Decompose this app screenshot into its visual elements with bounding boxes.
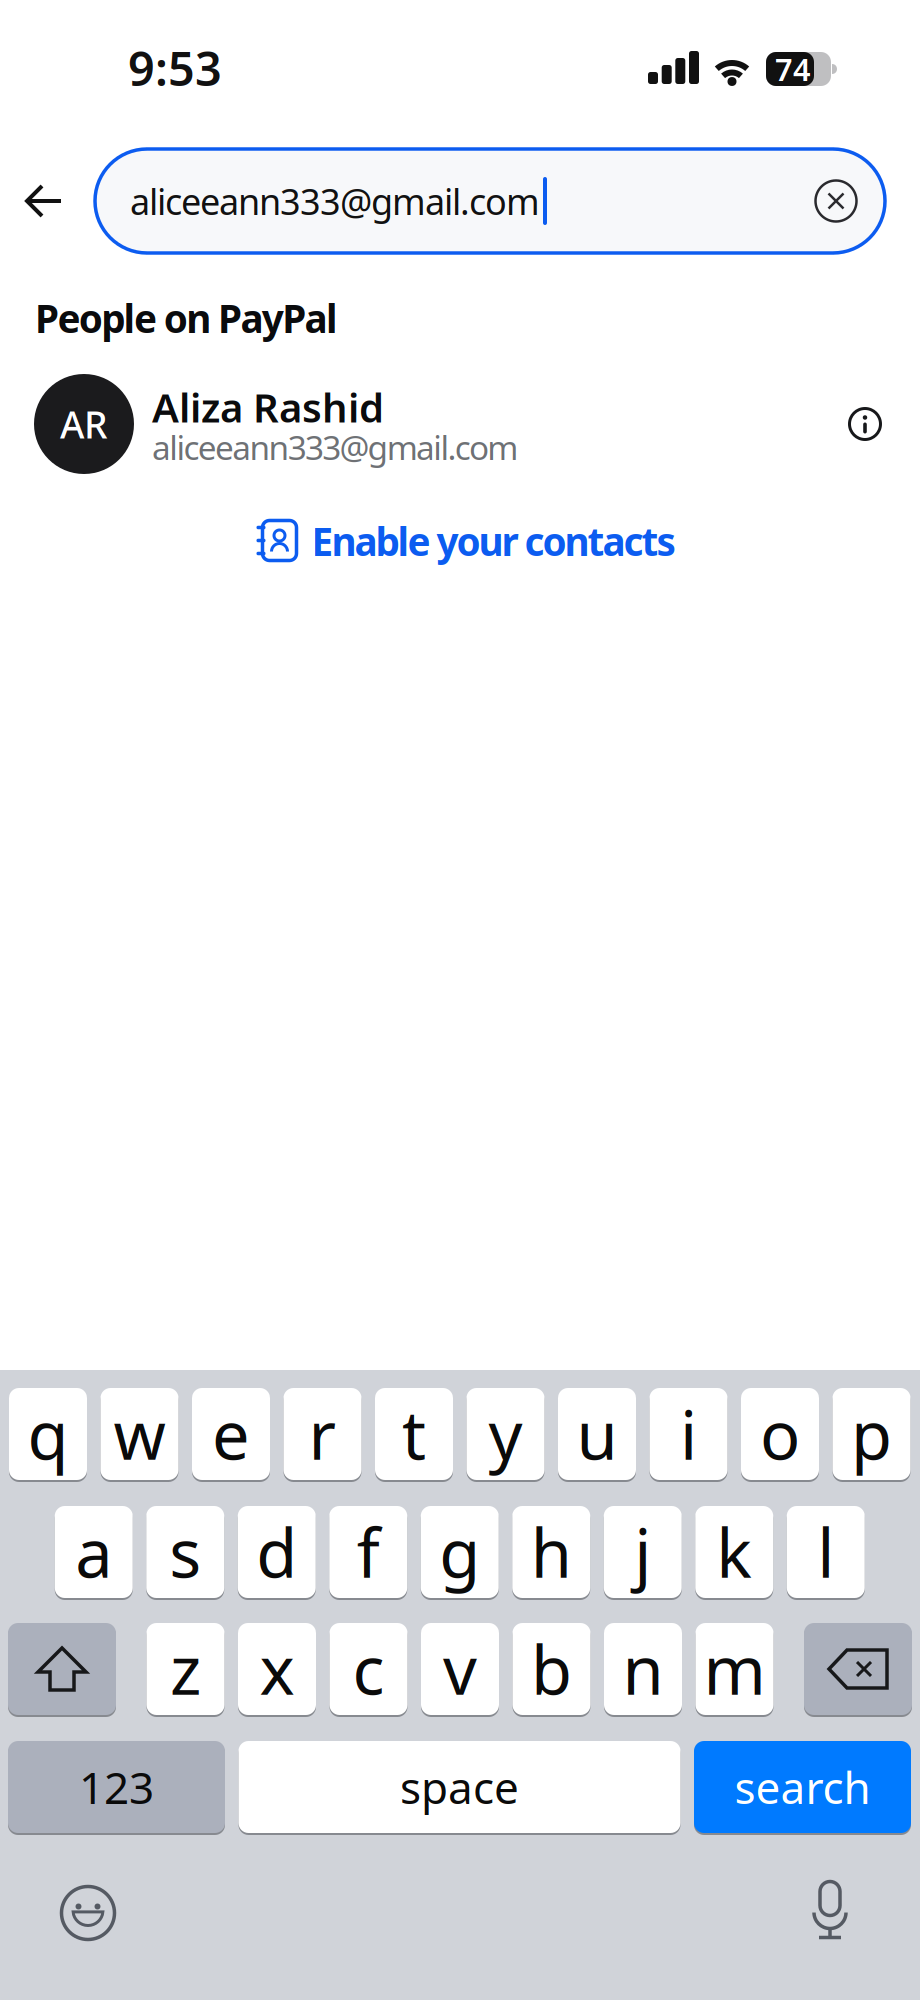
button[interactable]: o xyxy=(741,1388,819,1482)
button[interactable]: 123 xyxy=(8,1741,225,1835)
staticText: a xyxy=(75,1508,112,1596)
button[interactable]: g xyxy=(421,1506,499,1600)
staticText: q xyxy=(27,1390,68,1478)
staticText: d xyxy=(256,1508,297,1596)
staticText: r xyxy=(308,1390,336,1478)
button[interactable]: i xyxy=(649,1388,727,1482)
button[interactable]: s xyxy=(146,1506,224,1600)
staticText: k xyxy=(716,1508,752,1596)
button[interactable]: h xyxy=(512,1506,590,1600)
staticText: m xyxy=(703,1625,765,1713)
button[interactable] xyxy=(849,408,880,439)
staticText: f xyxy=(357,1508,380,1596)
staticText: n xyxy=(622,1625,663,1713)
button[interactable]: Enable your contacts xyxy=(256,515,675,567)
staticText: i xyxy=(680,1390,697,1478)
button[interactable]: u xyxy=(558,1388,636,1482)
staticText: u xyxy=(576,1390,617,1478)
staticText: c xyxy=(352,1625,384,1713)
staticText: 9:53 xyxy=(128,37,222,99)
staticText: x xyxy=(259,1625,294,1713)
button[interactable] xyxy=(815,180,856,221)
staticText: aliceeann333@gmail.com xyxy=(152,425,518,469)
button[interactable]: l xyxy=(787,1506,865,1600)
staticText: z xyxy=(170,1625,201,1713)
button[interactable] xyxy=(61,1886,114,1939)
staticText: Enable your contacts xyxy=(311,515,675,567)
button[interactable]: j xyxy=(604,1506,682,1600)
staticText: 74 xyxy=(775,49,811,89)
button[interactable] xyxy=(809,1881,851,1938)
button[interactable]: p xyxy=(832,1388,910,1482)
button[interactable]: r xyxy=(283,1388,361,1482)
staticText: AR xyxy=(60,399,108,449)
staticText: h xyxy=(531,1508,572,1596)
button[interactable]: z xyxy=(146,1623,224,1717)
staticText: j xyxy=(634,1508,651,1596)
button[interactable]: space xyxy=(238,1741,680,1835)
button[interactable]: t xyxy=(375,1388,453,1482)
button[interactable]: x xyxy=(238,1623,316,1717)
button[interactable]: c xyxy=(329,1623,407,1717)
staticText: y xyxy=(488,1390,522,1478)
button[interactable]: a xyxy=(55,1506,133,1600)
staticText: t xyxy=(402,1390,426,1478)
staticText: g xyxy=(439,1508,480,1596)
button[interactable]: q xyxy=(9,1388,87,1482)
staticText: 123 xyxy=(79,1758,154,1816)
button[interactable]: AR xyxy=(0,372,920,476)
staticText: Aliza Rashid xyxy=(152,380,384,433)
staticText: v xyxy=(443,1625,477,1713)
button[interactable]: aliceeann333@gmail.com xyxy=(95,149,885,253)
button[interactable]: m xyxy=(695,1623,773,1717)
staticText: People on PayPal xyxy=(35,292,338,344)
staticText: l xyxy=(817,1508,834,1596)
button[interactable]: k xyxy=(695,1506,773,1600)
staticText: space xyxy=(400,1758,519,1816)
button[interactable]: v xyxy=(421,1623,499,1717)
button[interactable] xyxy=(23,184,65,218)
staticText: s xyxy=(169,1508,201,1596)
button[interactable] xyxy=(804,1623,912,1717)
staticText: o xyxy=(760,1390,800,1478)
staticText: b xyxy=(531,1625,572,1713)
staticText: search xyxy=(734,1758,870,1816)
button[interactable] xyxy=(8,1623,116,1717)
staticText: w xyxy=(113,1390,165,1478)
button[interactable]: e xyxy=(192,1388,270,1482)
button[interactable]: n xyxy=(604,1623,682,1717)
button[interactable]: y xyxy=(466,1388,544,1482)
staticText: p xyxy=(851,1390,892,1478)
button[interactable]: search xyxy=(694,1741,911,1835)
staticText: aliceeann333@gmail.com xyxy=(130,177,540,225)
staticText: e xyxy=(212,1390,250,1478)
button[interactable]: f xyxy=(329,1506,407,1600)
button[interactable]: w xyxy=(100,1388,178,1482)
button[interactable]: d xyxy=(238,1506,316,1600)
button[interactable]: b xyxy=(512,1623,590,1717)
